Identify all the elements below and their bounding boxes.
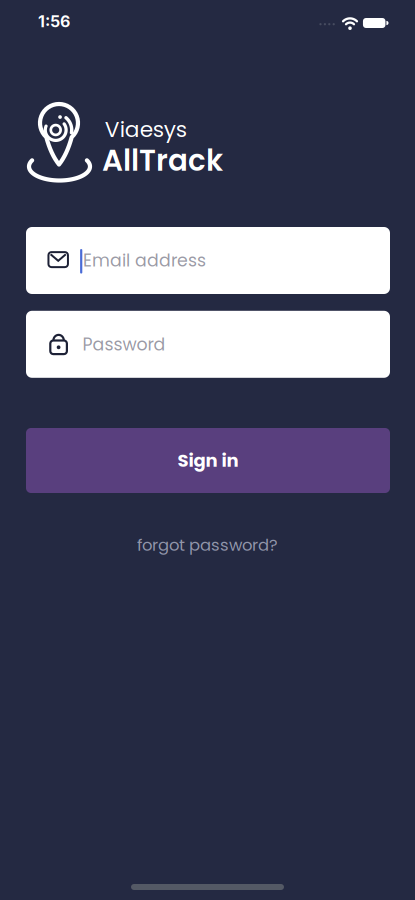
staticText: forgot password? (137, 533, 278, 556)
button[interactable]: forgot password? (137, 533, 278, 556)
button[interactable]: Sign in (26, 428, 390, 493)
button[interactable]: Email address (26, 227, 390, 294)
staticText: Password (82, 332, 165, 357)
staticText: AllTrack (102, 140, 223, 181)
button[interactable]: Password (26, 311, 390, 378)
staticText: 1:56 (38, 12, 70, 31)
staticText: Email address (83, 248, 206, 273)
staticText: Viaesys (105, 114, 187, 145)
staticText: Sign in (177, 448, 238, 473)
